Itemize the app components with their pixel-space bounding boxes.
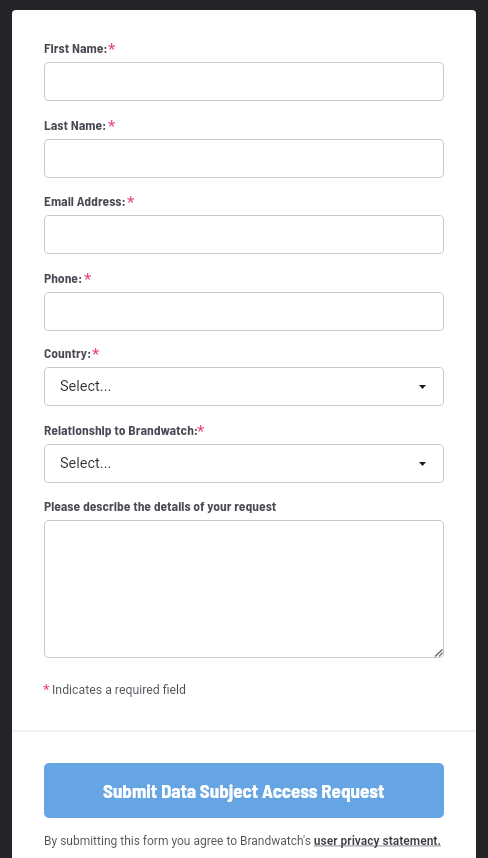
staticText: Phone: bbox=[44, 269, 83, 285]
staticText: By submitting this form you agree to Bra… bbox=[44, 834, 441, 848]
staticText: * bbox=[108, 116, 116, 136]
staticText: Please describe the details of your requ… bbox=[44, 497, 277, 513]
staticText: Select... bbox=[60, 455, 112, 472]
staticText: Submit Data Subject Access Request bbox=[103, 779, 385, 802]
button[interactable]: Describe the details of your request bbox=[44, 520, 444, 658]
staticText: Select... bbox=[60, 378, 112, 395]
staticText: Country: bbox=[44, 344, 92, 360]
button[interactable]: Country bbox=[44, 367, 444, 406]
button[interactable]: Email Address bbox=[44, 215, 444, 254]
staticText: * bbox=[43, 681, 50, 699]
staticText: * bbox=[127, 192, 135, 212]
staticText: Relationship to Brandwatch: bbox=[44, 421, 199, 437]
button[interactable]: Relationship to Brandwatch bbox=[44, 444, 444, 483]
button[interactable]: Submit Data Subject Access Request bbox=[44, 763, 444, 818]
button[interactable]: Last Name bbox=[44, 139, 444, 178]
staticText: Indicates a required field bbox=[52, 683, 187, 697]
button[interactable]: Phone bbox=[44, 292, 444, 331]
staticText: Email Address: bbox=[44, 192, 126, 208]
staticText: * bbox=[197, 421, 205, 441]
staticText: * bbox=[92, 344, 100, 364]
button[interactable]: First Name bbox=[44, 62, 444, 101]
staticText: * bbox=[84, 269, 92, 289]
staticText: First Name: bbox=[44, 39, 108, 55]
staticText: * bbox=[108, 39, 116, 59]
staticText: Last Name: bbox=[44, 116, 107, 132]
